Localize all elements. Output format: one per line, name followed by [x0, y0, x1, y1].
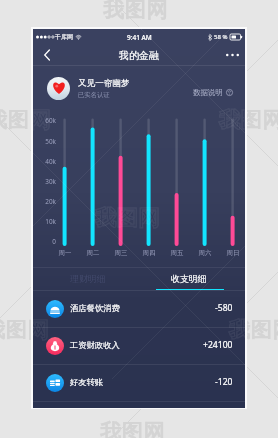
staticText: 我图网: [33, 107, 51, 133]
staticText: 我图网: [229, 317, 245, 343]
staticText: 40k: [33, 157, 56, 166]
staticText: 我图网: [95, 205, 160, 231]
button[interactable]: More options: [220, 45, 244, 65]
staticText: 我的金融: [119, 49, 159, 62]
staticText: -580: [215, 302, 233, 314]
staticText: 50k: [33, 137, 56, 146]
staticText: 周三: [109, 249, 133, 257]
staticText: 我图网: [219, 107, 278, 133]
staticText: 工资财政收入: [70, 340, 120, 350]
staticText: 数据说明: [193, 88, 223, 97]
staticText: 理财明细: [70, 273, 106, 284]
button[interactable]: 收支明细: [159, 268, 219, 291]
button[interactable]: Back: [35, 45, 59, 65]
staticText: 30k: [33, 177, 56, 186]
button[interactable]: 又见一帘幽梦: [47, 77, 130, 100]
staticText: 0: [33, 237, 56, 246]
staticText: 我图网: [0, 317, 49, 343]
staticText: 我图网: [33, 317, 49, 343]
staticText: 9:41 AM: [127, 33, 152, 42]
staticText: 我图网: [0, 107, 51, 133]
button[interactable]: 好友转账: [33, 364, 245, 401]
staticText: -120: [215, 376, 233, 388]
staticText: 58 %: [214, 33, 228, 41]
staticText: 周六: [193, 249, 217, 257]
staticText: 我图网: [100, 419, 165, 438]
staticText: 60k: [33, 116, 56, 125]
staticText: 我图网: [229, 317, 278, 343]
staticText: 又见一帘幽梦: [78, 78, 130, 89]
staticText: 我图网: [103, 0, 168, 23]
button[interactable]: 理财明细: [58, 268, 118, 291]
staticText: +24100: [203, 339, 233, 351]
staticText: 已实名认证: [78, 91, 110, 99]
staticText: 10k: [33, 217, 56, 226]
button[interactable]: 数据说明: [193, 88, 233, 97]
staticText: 周四: [137, 249, 161, 257]
staticText: 20k: [33, 197, 56, 206]
staticText: 我图网: [95, 205, 160, 231]
staticText: 周日: [221, 249, 245, 257]
staticText: 好友转账: [70, 377, 104, 387]
staticText: 周五: [165, 249, 189, 257]
staticText: 千库网: [55, 33, 73, 41]
button[interactable]: 酒店餐饮消费: [33, 290, 245, 327]
staticText: 我图网: [219, 107, 245, 133]
button[interactable]: 工资财政收入: [33, 327, 245, 364]
staticText: 周二: [81, 249, 105, 257]
staticText: 酒店餐饮消费: [70, 303, 120, 313]
staticText: 收支明细: [171, 273, 207, 284]
staticText: 周一: [53, 249, 77, 257]
